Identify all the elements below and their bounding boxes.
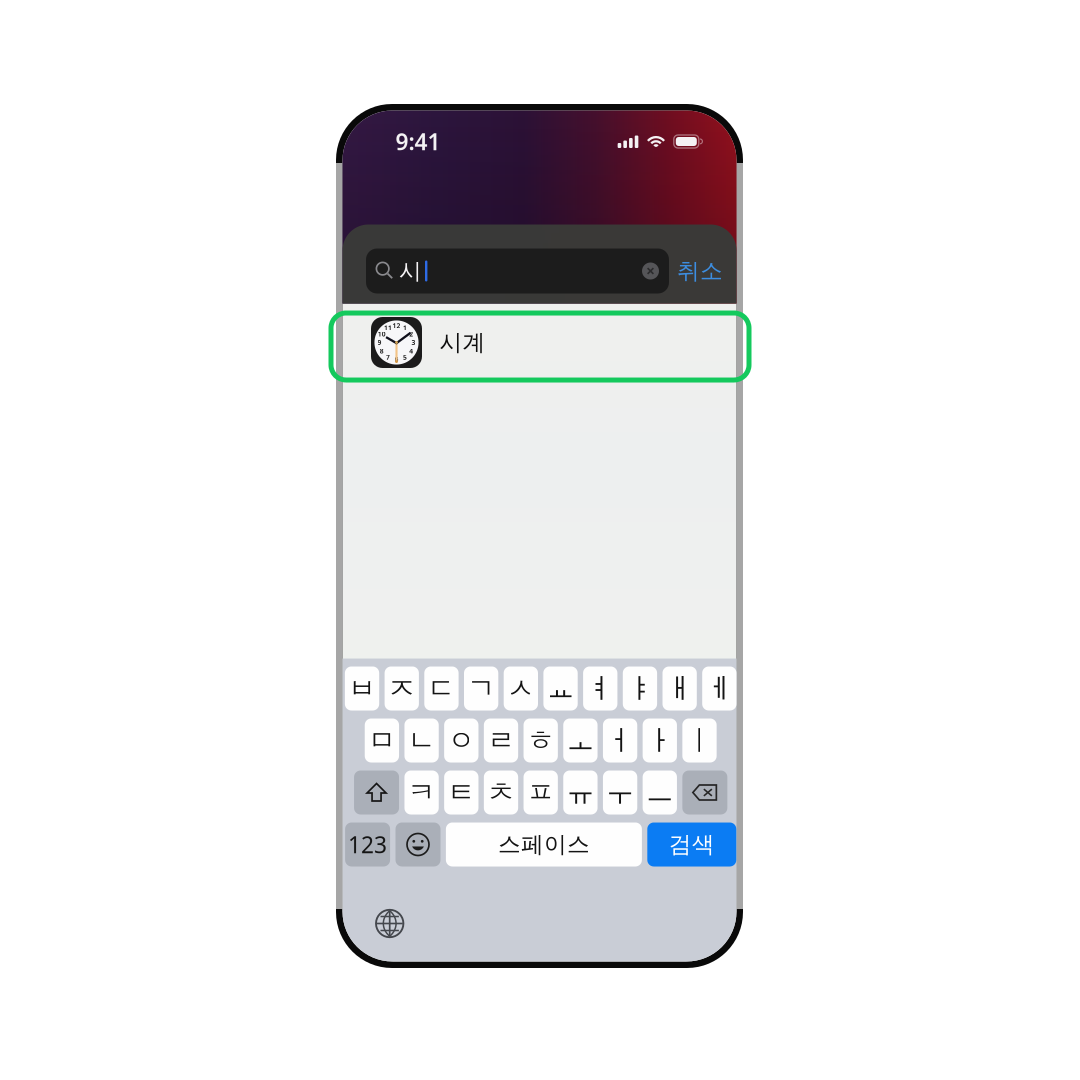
staticText: ㅍ <box>527 775 555 810</box>
staticText: 9 <box>378 338 382 347</box>
staticText: 1 <box>403 323 407 332</box>
staticText: 5 <box>403 353 407 362</box>
staticText: ㅣ <box>685 723 713 758</box>
staticText: ㅈ <box>388 671 416 706</box>
staticText: 시계 <box>439 329 485 356</box>
staticText: ㅊ <box>487 775 515 810</box>
button[interactable]: ㄹ <box>484 718 518 762</box>
button[interactable]: 123 <box>345 822 390 866</box>
staticText: ㅏ <box>646 723 674 758</box>
staticText: 스페이스 <box>498 831 590 858</box>
staticText: ㅁ <box>368 723 396 758</box>
staticText: 3 <box>411 338 415 347</box>
button[interactable]: ㅠ <box>563 770 597 814</box>
staticText: 10 <box>378 330 386 338</box>
button[interactable]: ㅅ <box>504 666 538 710</box>
button[interactable]: Backspace <box>682 770 727 814</box>
button[interactable]: 검색 <box>647 822 736 866</box>
button[interactable]: ㅓ <box>603 718 637 762</box>
staticText: ㅇ <box>447 723 475 758</box>
button[interactable]: ㅂ <box>345 666 379 710</box>
staticText: ㅗ <box>566 723 594 758</box>
button[interactable]: ㄱ <box>464 666 498 710</box>
button[interactable]: ㅑ <box>623 666 657 710</box>
button[interactable]: Emoji <box>395 822 440 866</box>
button[interactable]: ㅡ <box>643 770 677 814</box>
staticText: 검색 <box>669 831 715 858</box>
staticText: ㅜ <box>606 775 634 810</box>
button[interactable]: ㅈ <box>385 666 419 710</box>
staticText: ㄴ <box>408 723 436 758</box>
staticText: 2 <box>409 330 413 338</box>
button[interactable]: Change keyboard <box>370 903 410 943</box>
staticText: ㄱ <box>467 671 495 706</box>
button[interactable]: ㅔ <box>702 666 736 710</box>
button[interactable]: 시 <box>366 248 669 293</box>
button[interactable]: ㅌ <box>444 770 478 814</box>
button[interactable]: ㅐ <box>662 666 697 710</box>
button[interactable]: ㅁ <box>365 718 399 762</box>
staticText: ㄹ <box>487 723 515 758</box>
staticText: ㅅ <box>507 671 535 706</box>
staticText: 시 <box>399 257 422 285</box>
staticText: ㅔ <box>705 671 733 706</box>
staticText: ㅎ <box>527 723 555 758</box>
staticText: ㅂ <box>348 671 376 706</box>
staticText: ㅑ <box>626 671 654 706</box>
staticText: ㅐ <box>666 671 694 706</box>
button[interactable]: ㅗ <box>563 718 597 762</box>
button[interactable]: ㄴ <box>404 718 439 762</box>
button[interactable]: ㅍ <box>523 770 558 814</box>
button[interactable]: ㅇ <box>444 718 478 762</box>
staticText: 취소 <box>677 257 723 285</box>
staticText: ㅠ <box>566 775 594 810</box>
staticText: 4 <box>409 346 413 355</box>
staticText: 9:41 <box>395 126 440 156</box>
staticText: ㅌ <box>447 775 475 810</box>
button[interactable]: ㅋ <box>404 770 439 814</box>
staticText: ㅋ <box>408 775 436 810</box>
button[interactable]: ㅎ <box>523 718 558 762</box>
button[interactable]: ㅛ <box>543 666 578 710</box>
button[interactable]: ㅜ <box>603 770 637 814</box>
staticText: 6 <box>394 355 398 364</box>
staticText: ㅓ <box>606 723 634 758</box>
staticText: 7 <box>386 353 390 362</box>
staticText: ㅡ <box>646 775 674 810</box>
staticText: ㅛ <box>546 671 574 706</box>
button[interactable]: ㅣ <box>682 718 717 762</box>
button[interactable]: 스페이스 <box>446 822 642 866</box>
staticText: 8 <box>380 346 384 355</box>
button[interactable]: Shift <box>354 770 399 814</box>
button[interactable]: 취소 <box>677 248 723 293</box>
staticText: 123 <box>348 829 387 859</box>
staticText: 11 <box>384 323 392 332</box>
button[interactable]: ㅊ <box>484 770 518 814</box>
staticText: 12 <box>392 321 400 330</box>
staticText: ㅕ <box>586 671 614 706</box>
button[interactable]: 1 <box>342 303 736 381</box>
button[interactable]: ㅕ <box>583 666 617 710</box>
staticText: ㄷ <box>427 671 455 706</box>
button[interactable]: ㄷ <box>424 666 459 710</box>
button[interactable]: ㅏ <box>643 718 677 762</box>
